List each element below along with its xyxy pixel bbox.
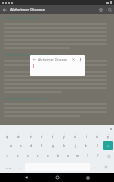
staticText: 8: [86, 133, 87, 135]
button[interactable]: a: [6, 141, 15, 150]
staticText: h: [63, 144, 65, 148]
staticText: g: [52, 144, 54, 148]
button[interactable]: Back: [22, 173, 31, 182]
button[interactable]: Bookmark: [96, 5, 105, 14]
staticText: j: [75, 144, 76, 148]
staticText: !: [87, 154, 88, 158]
staticText: t: [52, 135, 54, 139]
button[interactable]: 9: [92, 131, 102, 140]
button[interactable]: 2: [13, 131, 24, 140]
staticText: k: [85, 144, 87, 148]
button[interactable]: 0: [103, 131, 113, 140]
button[interactable]: m: [73, 151, 82, 161]
button[interactable]: c: [33, 151, 42, 161]
button[interactable]: Back: [31, 56, 38, 63]
button[interactable]: 6: [59, 131, 69, 140]
button[interactable]: 4: [37, 131, 47, 140]
staticText: v: [47, 154, 49, 158]
staticText: .: [94, 165, 95, 169]
staticText: 6: [64, 133, 65, 135]
button[interactable]: b: [53, 151, 62, 161]
button[interactable]: v: [43, 151, 52, 161]
button[interactable]: x: [23, 151, 32, 161]
staticText: u: [74, 135, 76, 139]
button[interactable]: 3: [25, 131, 36, 140]
button[interactable]: Backspace: [103, 151, 113, 161]
staticText: o: [96, 135, 98, 139]
staticText: m: [76, 154, 79, 158]
button[interactable]: j: [70, 141, 80, 150]
staticText: i: [86, 135, 87, 139]
button[interactable]: ?123: [1, 162, 16, 172]
button[interactable]: Clear: [70, 56, 77, 63]
button[interactable]: [30, 63, 85, 76]
button[interactable]: g: [48, 141, 58, 150]
button[interactable]: z: [13, 151, 22, 161]
staticText: w: [17, 135, 20, 139]
staticText: p: [107, 135, 109, 139]
staticText: Alzheimer Disease: [10, 7, 96, 12]
staticText: ?: [97, 154, 99, 158]
button[interactable]: Search: [105, 5, 114, 14]
staticText: Alzheimer Disease: [38, 57, 70, 62]
button[interactable]: Emoji: [99, 162, 113, 172]
staticText: e: [30, 135, 32, 139]
staticText: q: [6, 135, 8, 139]
staticText: z: [17, 154, 19, 158]
button[interactable]: f: [37, 141, 47, 150]
button[interactable]: Enter: [103, 141, 113, 150]
staticText: ?123: [6, 166, 12, 169]
button[interactable]: Navigate up: [0, 5, 9, 14]
staticText: 2: [18, 133, 19, 135]
staticText: 0: [108, 133, 109, 135]
staticText: 3: [31, 133, 32, 135]
button[interactable]: l: [92, 141, 102, 150]
staticText: 5: [53, 133, 54, 135]
staticText: f: [41, 144, 43, 148]
staticText: d: [30, 144, 32, 148]
button[interactable]: 5: [48, 131, 58, 140]
staticText: 1: [7, 133, 8, 135]
staticText: s: [20, 144, 22, 148]
staticText: n: [67, 154, 69, 158]
staticText: y: [63, 135, 65, 139]
staticText: l: [97, 144, 98, 148]
button[interactable]: k: [81, 141, 91, 150]
button[interactable]: 8: [81, 131, 91, 140]
staticText: 4: [42, 133, 43, 135]
button[interactable]: h: [59, 141, 69, 150]
staticText: b: [57, 154, 59, 158]
button[interactable]: Home: [53, 173, 62, 182]
button[interactable]: Recent apps: [83, 173, 92, 182]
button[interactable]: d: [26, 141, 36, 150]
staticText: ,: [20, 165, 21, 169]
button[interactable]: 1: [1, 131, 12, 140]
staticText: 7: [75, 133, 76, 135]
button[interactable]: s: [16, 141, 25, 150]
button[interactable]: 7: [70, 131, 80, 140]
staticText: a: [10, 144, 12, 148]
button[interactable]: ?: [93, 151, 102, 161]
button[interactable]: Keyboard settings: [108, 126, 113, 131]
button[interactable]: Shift: [1, 151, 12, 161]
button[interactable]: !: [83, 151, 92, 161]
staticText: x: [27, 154, 29, 158]
staticText: r: [41, 135, 43, 139]
button[interactable]: n: [63, 151, 72, 161]
staticText: 9: [97, 133, 98, 135]
staticText: c: [37, 154, 39, 158]
button[interactable]: Voice search: [77, 56, 84, 63]
